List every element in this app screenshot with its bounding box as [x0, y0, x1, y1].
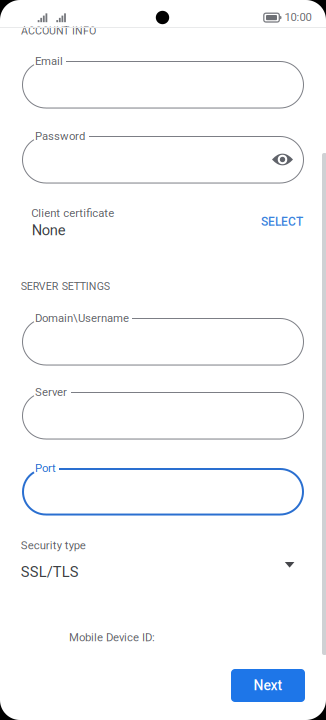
staticText: ACCOUNT INFO: [21, 25, 96, 37]
staticText: SELECT: [261, 215, 303, 229]
staticText: 10:00: [284, 10, 311, 24]
button[interactable]: Email: [0, 0, 282, 47]
button[interactable]: Domain\Username: [0, 0, 282, 47]
staticText: SERVER SETTINGS: [21, 280, 110, 292]
button[interactable]: Client certificate: [0, 0, 282, 44]
staticText: Mobile Device ID:: [69, 631, 155, 644]
staticText: Client certificate: [31, 206, 114, 220]
staticText: Port: [35, 461, 56, 475]
staticText: SSL/TLS: [21, 563, 79, 581]
staticText: Server: [35, 385, 67, 399]
button[interactable]: Next: [231, 669, 305, 702]
staticText: Next: [253, 677, 282, 694]
button[interactable]: Server: [0, 0, 282, 47]
staticText: Email: [35, 54, 63, 68]
staticText: Password: [35, 129, 85, 143]
button[interactable]: Port: [0, 0, 282, 47]
button[interactable]: Password: [0, 0, 282, 47]
button[interactable]: Show password: [0, 0, 21, 15]
staticText: None: [32, 222, 66, 239]
staticText: Domain\Username: [35, 311, 129, 325]
button[interactable]: Security type: [0, 0, 282, 46]
staticText: Security type: [21, 539, 86, 552]
